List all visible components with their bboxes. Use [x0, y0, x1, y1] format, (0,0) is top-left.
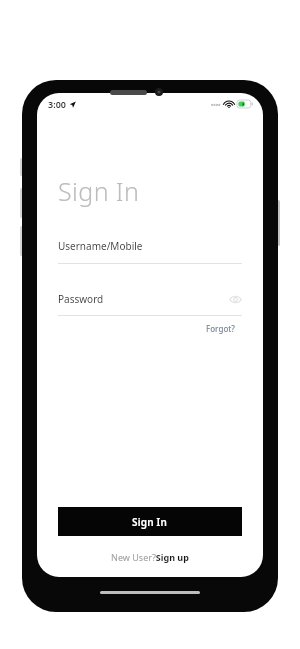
staticText: New User?Sign up [111, 551, 189, 563]
button[interactable]: Show password [229, 294, 242, 305]
staticText: 3:00 [48, 98, 66, 110]
button[interactable]: Username/Mobile [58, 239, 242, 264]
button[interactable]: Sign In [58, 507, 242, 536]
button[interactable]: Forgot? [204, 321, 237, 336]
staticText: Forgot? [206, 323, 235, 334]
staticText: Username/Mobile [58, 239, 143, 253]
button[interactable]: Password [58, 292, 242, 316]
staticText: Password [58, 292, 104, 306]
button[interactable]: New User?Sign up [105, 548, 195, 566]
staticText: Sign In [58, 174, 140, 208]
staticText: Sign In [132, 515, 168, 529]
